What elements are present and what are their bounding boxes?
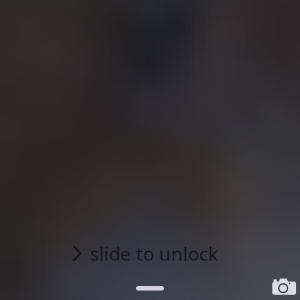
button[interactable]: slide to unlock xyxy=(72,241,218,266)
staticText: slide to unlock xyxy=(90,241,218,266)
button[interactable]: Camera xyxy=(272,277,298,296)
